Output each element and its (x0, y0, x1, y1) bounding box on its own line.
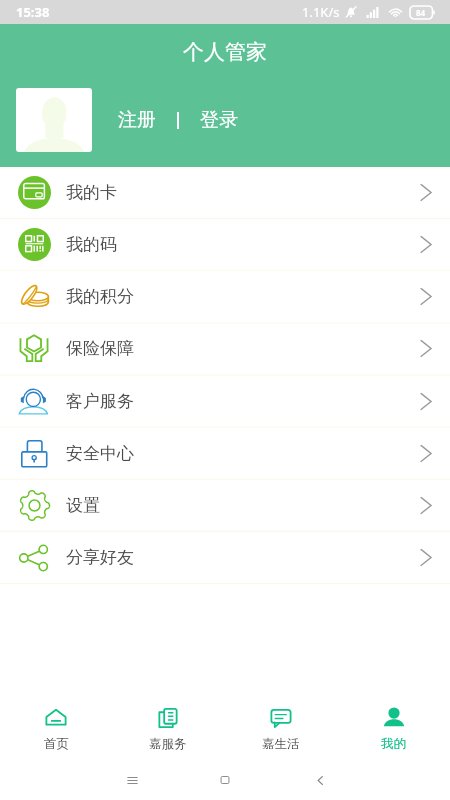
staticText: 个人管家 (183, 39, 267, 65)
staticText: 登录 (200, 108, 238, 132)
button[interactable]: Back (298, 760, 342, 800)
button[interactable]: 安全中心 (0, 428, 450, 479)
staticText: 嘉生活 (262, 736, 300, 752)
staticText: 嘉服务 (149, 736, 187, 752)
button[interactable]: 我的码 (0, 219, 450, 270)
button[interactable]: 我的卡 (0, 167, 450, 218)
staticText: 设置 (66, 495, 100, 516)
staticText: 我的 (381, 736, 406, 752)
button[interactable]: 嘉生活 (224, 698, 337, 760)
staticText: 首页 (44, 736, 69, 752)
button[interactable]: 分享好友 (0, 532, 450, 583)
staticText: 我的积分 (66, 286, 134, 307)
button[interactable]: Home (203, 760, 247, 800)
button[interactable]: 嘉服务 (112, 698, 224, 760)
staticText: 客户服务 (66, 391, 134, 412)
staticText: 分享好友 (66, 547, 134, 568)
staticText: 我的卡 (66, 182, 117, 203)
staticText: 15:38 (16, 3, 50, 21)
button[interactable]: 登录 (195, 100, 243, 140)
staticText: 我的码 (66, 234, 117, 255)
staticText: 注册 (118, 108, 156, 132)
button[interactable]: 我的 (337, 698, 450, 760)
button[interactable]: Avatar (16, 88, 92, 152)
staticText: 保险保障 (66, 338, 134, 359)
button[interactable]: 客户服务 (0, 376, 450, 427)
staticText: 84 (416, 7, 426, 18)
button[interactable]: Menu (110, 760, 154, 800)
button[interactable]: 设置 (0, 480, 450, 531)
button[interactable]: 保险保障 (0, 323, 450, 374)
staticText: 1.1K/s (302, 3, 340, 21)
button[interactable]: 首页 (0, 698, 112, 760)
button[interactable]: 注册 (113, 100, 161, 140)
staticText: 安全中心 (66, 443, 134, 464)
button[interactable]: 我的积分 (0, 271, 450, 322)
